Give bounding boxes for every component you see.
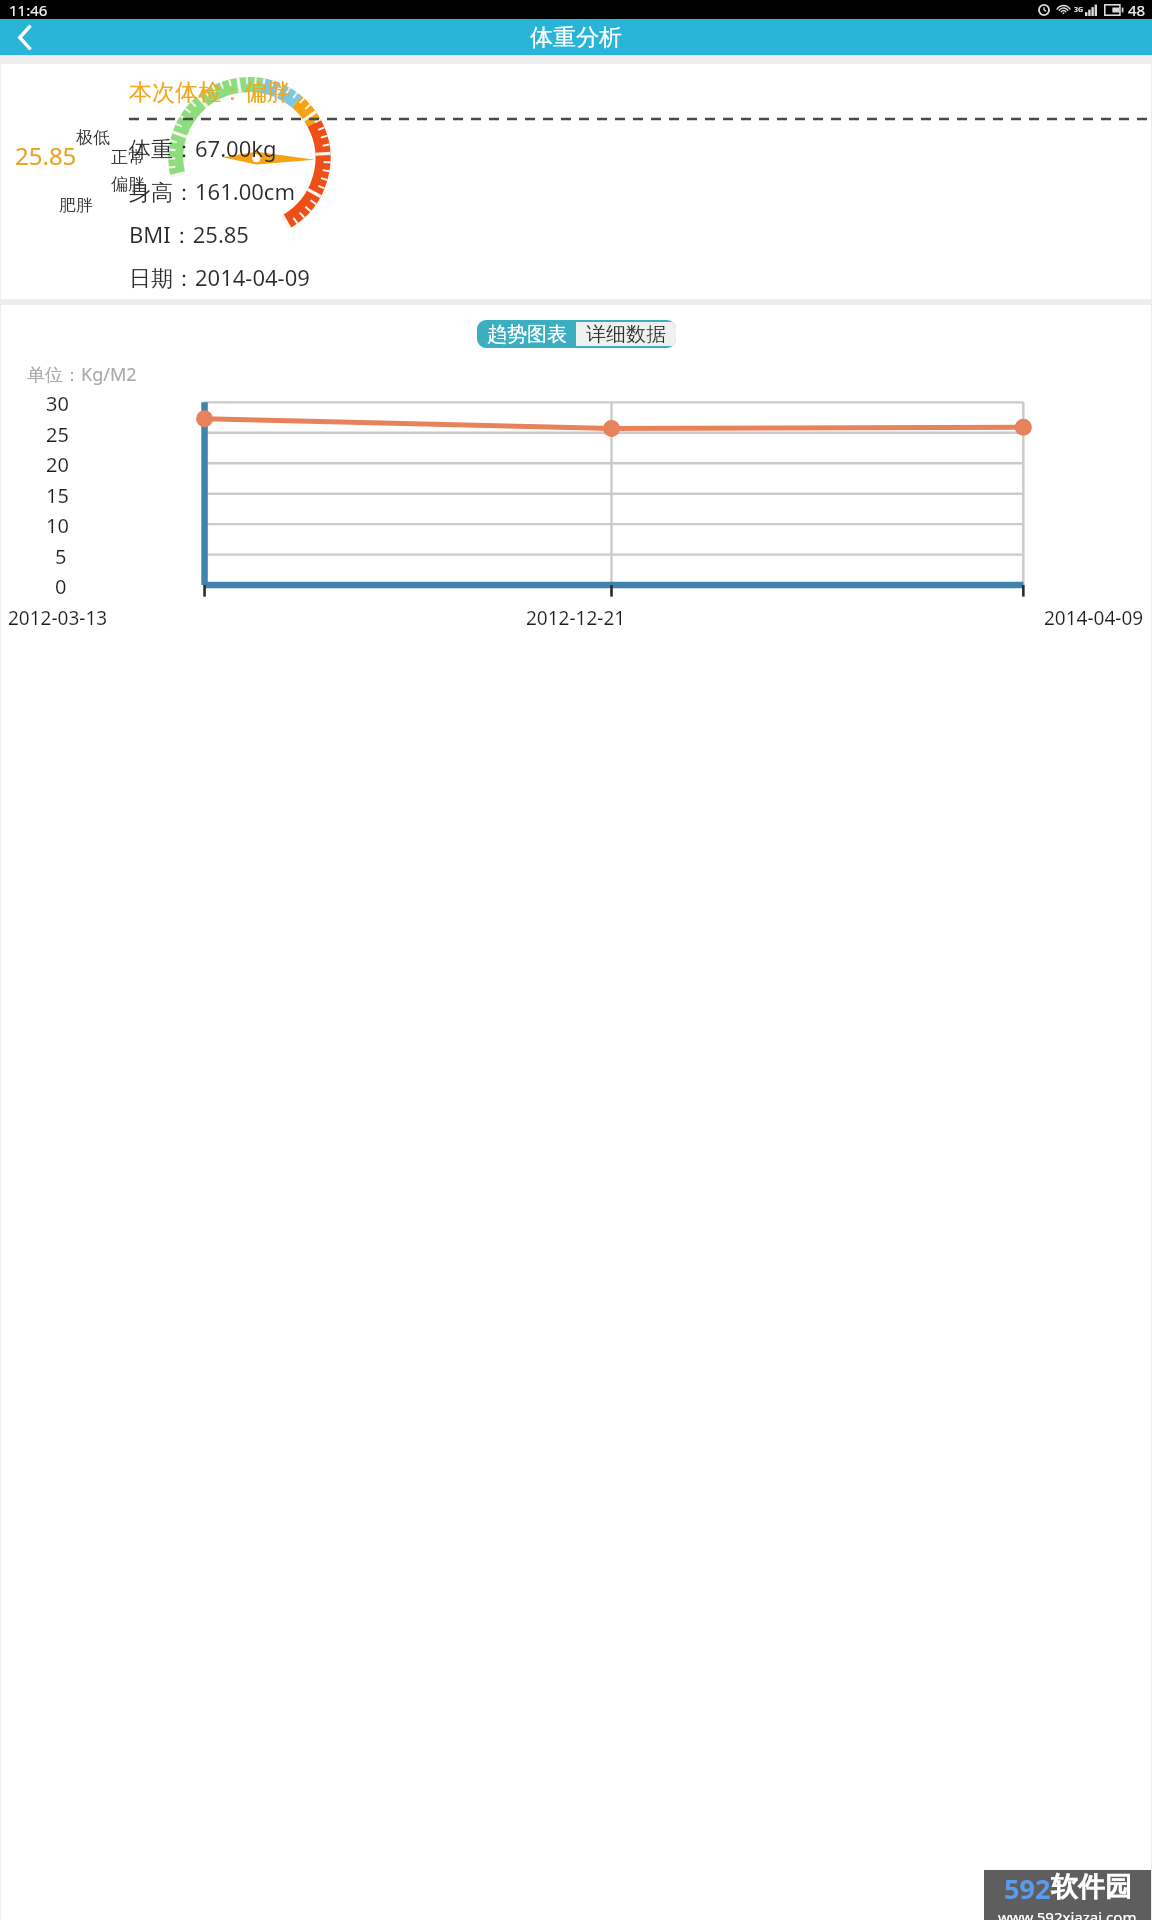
- staticText: 15: [46, 482, 69, 509]
- staticText: 10: [46, 512, 69, 539]
- staticText: www.592xiazai.com: [998, 1907, 1137, 1920]
- staticText: 单位：Kg/M2: [27, 362, 137, 387]
- staticText: 体重分析: [530, 23, 622, 52]
- staticText: 0: [55, 573, 67, 600]
- staticText: 30: [46, 390, 69, 417]
- button[interactable]: Back: [0, 19, 50, 55]
- staticText: 3G: [1074, 5, 1084, 15]
- staticText: 正常: [111, 147, 145, 168]
- staticText: 趋势图表: [487, 322, 567, 347]
- staticText: 软件园: [1051, 1870, 1132, 1904]
- staticText: 48: [1128, 0, 1146, 19]
- staticText: 极低: [76, 127, 110, 148]
- staticText: 肥胖: [59, 195, 93, 216]
- staticText: 身高：161.00cm: [129, 176, 295, 206]
- staticText: 详细数据: [586, 322, 666, 346]
- staticText: 偏胖: [111, 174, 145, 195]
- staticText: 25.85: [15, 139, 77, 172]
- staticText: 日期：2014-04-09: [129, 262, 310, 292]
- staticText: 2012-12-21: [526, 605, 626, 631]
- staticText: 2014-04-09: [1044, 605, 1144, 631]
- staticText: 2012-03-13: [8, 605, 108, 631]
- staticText: 592: [1004, 1870, 1051, 1907]
- staticText: 体重：67.00kg: [129, 133, 277, 163]
- staticText: 20: [46, 451, 69, 478]
- button[interactable]: 趋势图表: [477, 320, 576, 348]
- button[interactable]: 详细数据: [576, 322, 676, 346]
- staticText: 25: [46, 421, 69, 448]
- staticText: 11:46: [9, 0, 48, 19]
- staticText: 5: [55, 543, 67, 570]
- staticText: BMI：25.85: [129, 219, 249, 249]
- staticText: 本次体检：偏胖: [129, 78, 290, 107]
